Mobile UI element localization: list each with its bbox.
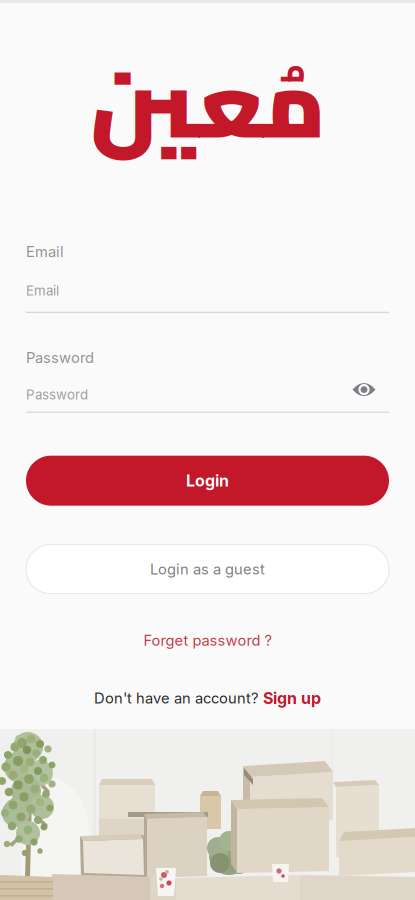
staticText: Password: [26, 349, 94, 366]
staticText: Sign up: [263, 688, 321, 708]
staticText: Don't have an account?: [94, 689, 258, 707]
staticText: Login: [186, 471, 229, 490]
staticText: Login as a guest: [150, 560, 265, 578]
button[interactable]: Show password: [348, 387, 389, 403]
button[interactable]: Forget password ?: [143, 632, 271, 649]
staticText: مُعين: [89, 16, 325, 191]
button[interactable]: Don't have an account?: [94, 688, 321, 708]
staticText: Email: [26, 283, 59, 299]
button[interactable]: Login as a guest: [26, 545, 389, 594]
staticText: Email: [26, 243, 64, 261]
staticText: Password: [26, 386, 88, 403]
staticText: Forget password ?: [143, 632, 271, 649]
button[interactable]: Login: [26, 456, 389, 506]
